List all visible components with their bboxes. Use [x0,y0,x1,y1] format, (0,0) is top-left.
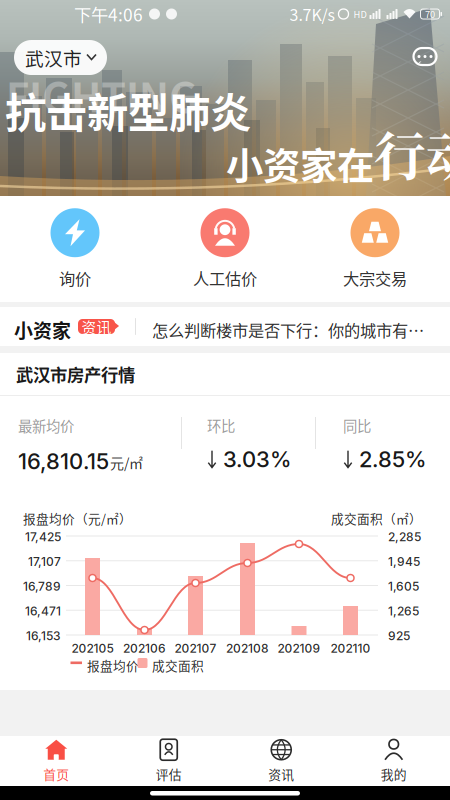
button[interactable]: 客服消息 [412,46,438,68]
staticText: 3.7K/s [289,2,334,26]
staticText: 抗击新型肺炎 [5,80,251,140]
staticText: 202109 [277,641,320,655]
staticText: 最新均价 [18,415,74,436]
staticText: 人工估价 [193,266,257,290]
staticText: 70 [425,7,435,21]
staticText: 3.03% [223,446,291,472]
staticText: FIGHTING [6,66,198,124]
staticText: 成交面积（㎡） [331,509,422,527]
staticText: 小资家在 [226,137,374,191]
staticText: 202105 [71,641,113,655]
staticText: 武汉市 [25,44,82,71]
staticText: 大宗交易 [343,266,407,290]
staticText: 17,425 [25,529,61,544]
staticText: HD [353,7,366,21]
staticText: 16,471 [25,604,61,618]
staticText: 下午4:06 [74,1,143,27]
staticText: 2.85% [359,446,426,472]
staticText: 2,285 [388,529,421,544]
staticText: 报盘均价（元/㎡） [23,509,132,527]
staticText: 202107 [174,641,216,655]
staticText: 202108 [226,641,269,655]
button[interactable]: 评估 [112,736,225,786]
staticText: 资讯 [268,765,294,783]
staticText: 报盘均价 [87,656,139,674]
staticText: 成交面积 [152,656,204,674]
staticText: 17,107 [28,554,61,569]
staticText: 202106 [123,641,166,655]
staticText: 元/㎡ [110,452,143,472]
staticText: 询价 [59,266,91,290]
staticText: 16,810.15 [18,448,109,474]
staticText: 925 [388,628,410,643]
staticText: 武汉市房产行情 [16,361,135,387]
button[interactable]: 大宗交易 [300,202,450,296]
staticText: 评估 [156,765,182,783]
staticText: 16,153 [26,628,61,643]
button[interactable]: 询价 [0,202,150,296]
staticText: 1,265 [388,604,419,618]
staticText: 1,945 [388,554,420,569]
staticText: 1,605 [388,579,419,593]
button[interactable]: 资讯 [225,736,337,786]
button[interactable]: 人工估价 [150,202,300,296]
button[interactable]: 我的 [337,736,450,786]
staticText: 202110 [330,641,370,655]
button[interactable]: 武汉市 [14,40,107,75]
staticText: 我的 [381,765,407,783]
staticText: 16,789 [23,579,61,593]
button[interactable]: 小资家 [0,307,450,346]
staticText: 环比 [207,415,235,436]
staticText: 小资家 [14,316,71,343]
button[interactable]: 首页 [0,736,112,786]
staticText: 怎么判断楼市是否下行：你的城市有… [152,318,424,342]
staticText: 资讯 [81,316,111,337]
staticText: 同比 [343,415,371,436]
staticText: 首页 [43,765,69,783]
staticText: 行动 [374,116,450,191]
